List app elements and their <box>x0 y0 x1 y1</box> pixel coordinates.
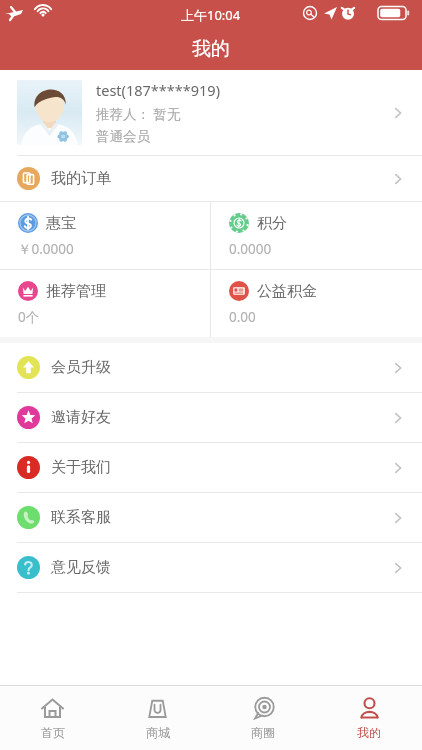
button[interactable]: 公益积金 <box>211 270 422 337</box>
staticText: 0个 <box>18 308 40 326</box>
staticText: 我的订单 <box>51 169 390 188</box>
staticText: ￥0.0000 <box>18 240 74 258</box>
staticText: 0.0000 <box>229 240 272 258</box>
button[interactable]: 商城 <box>105 686 210 750</box>
staticText: 0.00 <box>229 308 256 326</box>
button[interactable]: 惠宝 <box>0 202 210 269</box>
staticText: 联系客服 <box>51 508 390 527</box>
button[interactable]: 会员升级 <box>0 343 422 392</box>
staticText: 惠宝 <box>46 214 76 233</box>
button[interactable]: 关于我们 <box>0 443 422 492</box>
button[interactable]: test(187*****919) <box>0 70 422 155</box>
button[interactable]: 积分 <box>211 202 422 269</box>
staticText: 我的 <box>192 37 230 61</box>
staticText: 会员升级 <box>51 358 390 377</box>
button[interactable]: 首页 <box>0 686 105 750</box>
button[interactable]: 联系客服 <box>0 493 422 542</box>
staticText: 上午10:04 <box>181 6 241 24</box>
staticText: 普通会员 <box>96 128 150 145</box>
staticText: 意见反馈 <box>51 558 390 577</box>
staticText: 商圈 <box>251 725 275 740</box>
button[interactable]: 意见反馈 <box>0 543 422 592</box>
button[interactable]: 商圈 <box>210 686 316 750</box>
staticText: 商城 <box>146 725 170 740</box>
button[interactable]: 我的订单 <box>0 156 422 201</box>
staticText: 首页 <box>41 725 65 740</box>
staticText: 公益积金 <box>257 282 317 301</box>
staticText: 关于我们 <box>51 458 390 477</box>
staticText: 邀请好友 <box>51 408 390 427</box>
button[interactable]: 推荐管理 <box>0 270 210 337</box>
staticText: 推荐管理 <box>46 282 106 301</box>
staticText: 积分 <box>257 214 287 233</box>
button[interactable]: 我的 <box>316 686 422 750</box>
staticText: 推荐人： 暂无 <box>96 105 181 123</box>
staticText: 我的 <box>357 725 381 740</box>
button[interactable]: 邀请好友 <box>0 393 422 442</box>
staticText: test(187*****919) <box>96 80 221 100</box>
